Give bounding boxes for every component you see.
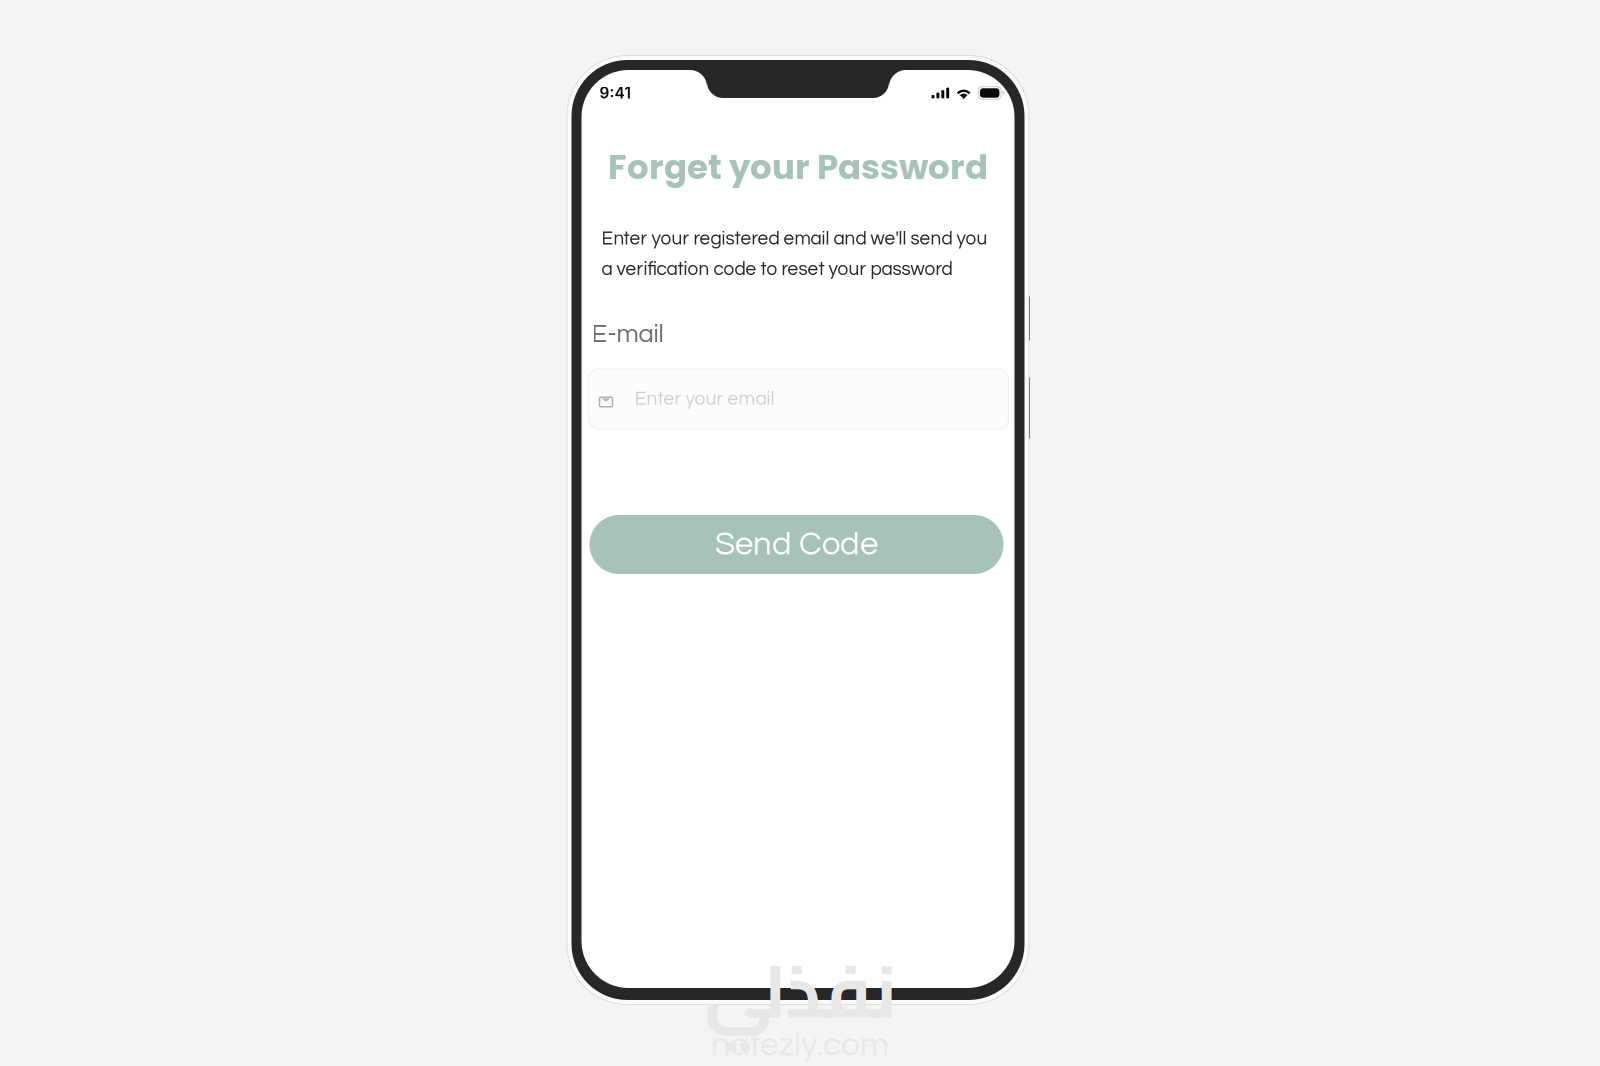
staticText: nafezly.com bbox=[711, 1028, 889, 1062]
staticText: Enter your email bbox=[634, 389, 774, 409]
staticText: نفذلي bbox=[703, 922, 896, 1060]
button[interactable]: Send Code bbox=[589, 515, 1003, 574]
staticText: E-mail bbox=[591, 321, 663, 347]
staticText: a verification code to reset your passwo… bbox=[601, 259, 952, 279]
staticText: Send Code bbox=[715, 528, 878, 561]
staticText: 9:41 bbox=[599, 84, 630, 102]
staticText: Enter your registered email and we'll se… bbox=[601, 229, 987, 248]
staticText: Forget your Password bbox=[608, 143, 988, 191]
